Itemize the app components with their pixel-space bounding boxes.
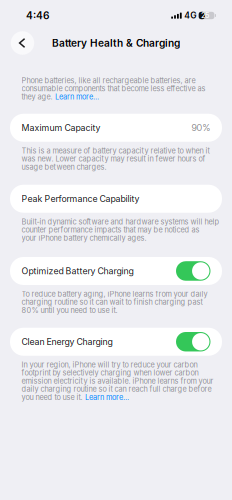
staticText: This is a measure of battery capacity re… [21,146,209,155]
staticText: Optimized Battery Charging [21,266,133,276]
staticText: daily charging routine so it can reach f… [21,385,211,394]
staticText: emission electricity is available. iPhon… [21,376,213,385]
staticText: 4G [184,10,196,21]
staticText: 90% [191,122,210,133]
staticText: Battery Health & Charging [52,37,180,49]
staticText: Learn more... [55,92,99,101]
button[interactable]: Learn more... [55,92,99,101]
staticText: 80% until you need to use it. [21,306,117,315]
button[interactable]: Optimized Battery Charging [0,242,232,285]
staticText: 4:46 [26,9,49,22]
staticText: In your region, iPhone will try to reduc… [21,360,197,369]
staticText: your iPhone battery chemically ages. [21,233,146,242]
staticText: you need to use it. [21,393,82,402]
button[interactable]: Back [10,30,35,55]
button[interactable]: Maximum Capacity [0,101,232,142]
staticText: To reduce battery aging, iPhone learns f… [21,289,207,298]
staticText: Learn more... [85,393,129,402]
staticText: charging routine so it can wait to finis… [21,298,202,307]
button[interactable]: Peak Performance Capability [0,171,232,213]
staticText: footprint by selectively charging when l… [21,368,198,377]
button[interactable]: Clean Energy Charging [0,315,232,356]
staticText: Maximum Capacity [21,122,100,133]
button[interactable]: Learn more... [85,393,129,402]
staticText: Phone batteries, like all rechargeable b… [21,76,195,85]
staticText: they age. [21,92,52,101]
staticText: consumable components that become less e… [21,84,205,93]
staticText: Built-in dynamic software and hardware s… [21,217,219,226]
staticText: counter performance impacts that may be … [21,225,199,234]
staticText: 25 [201,11,209,20]
staticText: usage between charges. [21,163,106,172]
staticText: Clean Energy Charging [21,336,112,347]
staticText: Peak Performance Capability [21,193,139,204]
staticText: was new. Lower capacity may result in fe… [21,154,205,163]
